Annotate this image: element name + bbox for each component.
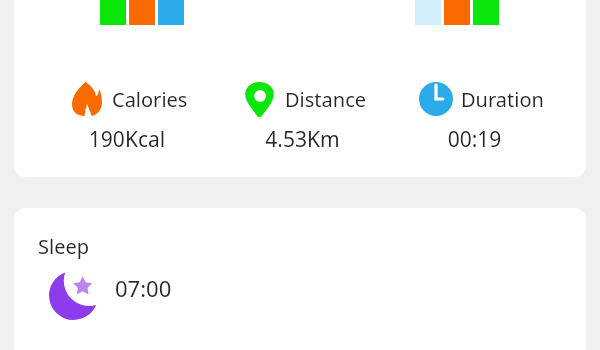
- other: Duration: [415, 82, 453, 116]
- other: Calories: [72, 82, 102, 116]
- staticText: 07:00: [115, 273, 172, 303]
- staticText: 00:19: [379, 125, 570, 154]
- staticText: Sleep: [38, 233, 89, 260]
- button[interactable]: Distance: [204, 82, 395, 162]
- staticText: 4.53Km: [207, 125, 398, 154]
- staticText: Distance: [285, 86, 367, 113]
- staticText: Duration: [461, 86, 544, 113]
- button[interactable]: Duration: [395, 82, 586, 162]
- other: Sleep duration: [49, 271, 98, 320]
- button[interactable]: Calories: [14, 82, 204, 162]
- other: Distance: [245, 82, 274, 117]
- button[interactable]: Calories: [14, 0, 586, 177]
- button[interactable]: Sleep: [14, 208, 586, 350]
- staticText: 190Kcal: [32, 125, 222, 154]
- staticText: Calories: [112, 86, 188, 113]
